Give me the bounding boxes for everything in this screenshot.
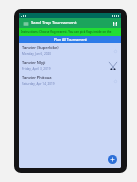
- button[interactable]: Instructions: Choose flag nearest. You c…: [19, 28, 121, 36]
- staticText: Monday, Jan 6, 2020: [22, 52, 52, 56]
- button[interactable]: Tanvier (Superbike): [19, 43, 121, 58]
- button[interactable]: Plan All Tournament: [19, 36, 121, 43]
- button[interactable]: Tanvier Nlyji: [19, 58, 121, 73]
- other: More options: [112, 48, 118, 54]
- other: More options: [112, 78, 118, 84]
- staticText: Saturday, Apr 14, 2019: [22, 82, 55, 86]
- staticText: Tanvier (Superbike): [22, 45, 59, 50]
- other: Crossed golf clubs: [107, 60, 118, 71]
- button[interactable]: Open navigation menu: [22, 20, 29, 27]
- staticText: Sand Trap Tournament: [31, 20, 111, 26]
- button[interactable]: Save: [111, 20, 118, 27]
- button[interactable]: Tanvier Phitoua: [19, 73, 121, 88]
- staticText: Friday, April 3, 2019: [22, 67, 51, 71]
- staticText: Plan All Tournament: [54, 37, 87, 42]
- staticText: Tanvier Nlyji: [22, 60, 46, 65]
- button[interactable]: Add tournament: [108, 155, 117, 164]
- staticText: Instructions: Choose flag nearest. You c…: [21, 30, 119, 34]
- staticText: Tanvier Phitoua: [22, 75, 52, 80]
